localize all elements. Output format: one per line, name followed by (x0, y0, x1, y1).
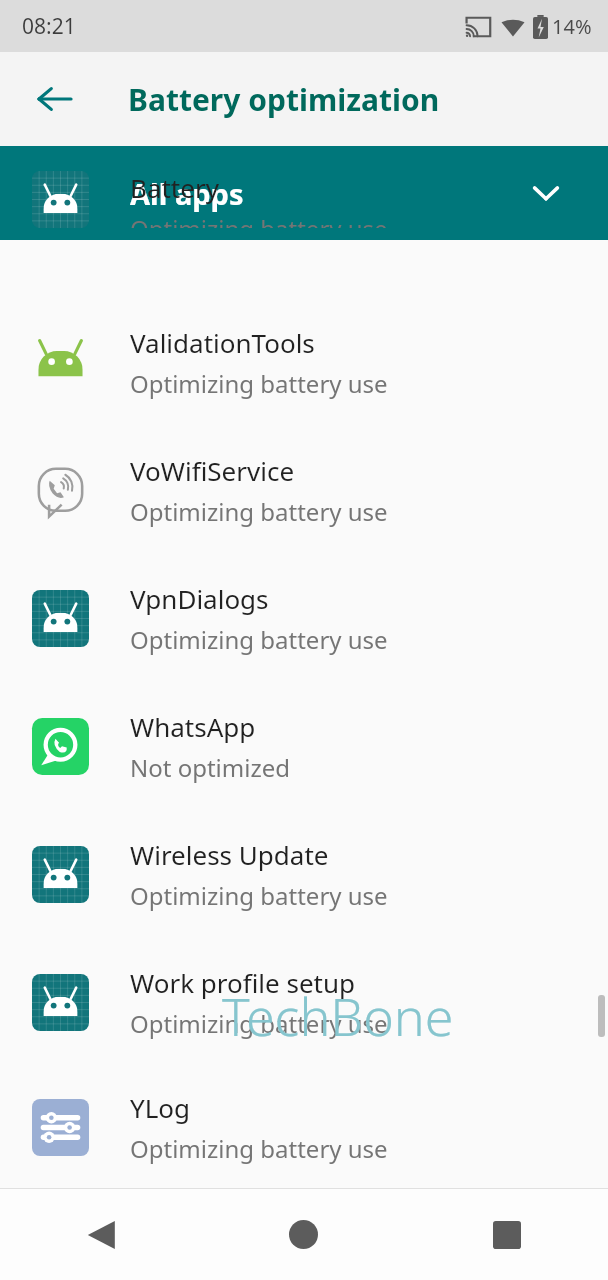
button[interactable]: Back (18, 63, 90, 135)
staticText: Work profile setup (130, 965, 356, 1000)
staticText: All apps (130, 174, 244, 213)
staticText: VoWifiService (130, 453, 295, 488)
button[interactable]: Home (202, 1189, 405, 1280)
staticText: Optimizing battery use (130, 367, 388, 400)
button[interactable]: ValidationTools (0, 298, 608, 426)
staticText: Optimizing battery use (130, 1132, 388, 1165)
staticText: Optimizing battery use (130, 1007, 388, 1040)
button[interactable]: Recents (405, 1189, 608, 1280)
staticText: YLog (130, 1090, 191, 1125)
staticText: Battery (130, 170, 219, 205)
button[interactable]: VpnDialogs (0, 554, 608, 682)
button[interactable]: Back (0, 1189, 202, 1280)
button[interactable]: YLog (0, 1066, 608, 1188)
staticText: TechBone (222, 980, 454, 1051)
staticText: 08:21 (22, 12, 76, 41)
staticText: Wireless Update (130, 837, 329, 872)
staticText: Battery optimization (128, 79, 440, 120)
staticText: Optimizing battery use (130, 495, 388, 528)
staticText: VpnDialogs (130, 581, 269, 616)
staticText: Not optimized (130, 751, 291, 784)
staticText: Optimizing battery use (130, 879, 388, 912)
staticText: Optimizing battery use (130, 212, 388, 228)
staticText: Optimizing battery use (130, 623, 388, 656)
staticText: ValidationTools (130, 325, 315, 360)
button[interactable]: All apps (0, 146, 608, 240)
staticText: 14% (552, 13, 592, 40)
button[interactable]: WhatsApp (0, 682, 608, 810)
staticText: WhatsApp (130, 709, 256, 744)
button[interactable]: Work profile setup (0, 938, 608, 1066)
button[interactable]: Wireless Update (0, 810, 608, 938)
button[interactable]: VoWifiService (0, 426, 608, 554)
